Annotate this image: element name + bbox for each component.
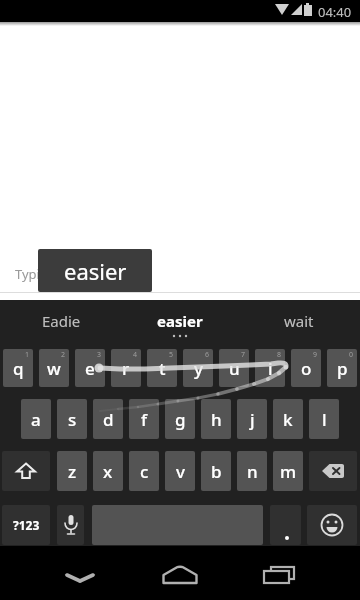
staticText: v <box>176 460 185 483</box>
button[interactable] <box>56 563 104 593</box>
staticText: wait <box>284 311 314 331</box>
button[interactable]: z <box>57 451 87 491</box>
staticText: i <box>268 357 273 380</box>
staticText: d <box>103 408 114 431</box>
staticText: 9 <box>313 350 318 360</box>
staticText: Typing... <box>15 265 67 283</box>
button[interactable]: j <box>237 399 267 439</box>
button[interactable]: m <box>273 451 303 491</box>
button[interactable] <box>255 559 303 591</box>
staticText: p <box>337 357 348 380</box>
button[interactable] <box>309 451 357 491</box>
button[interactable]: o <box>291 349 321 387</box>
button[interactable]: k <box>273 399 303 439</box>
staticText: w <box>47 357 61 380</box>
button[interactable] <box>156 559 204 591</box>
staticText: 1 <box>25 350 30 360</box>
staticText: n <box>247 460 258 483</box>
staticText: 3 <box>97 350 102 360</box>
staticText: s <box>68 408 77 431</box>
staticText: u <box>229 357 240 380</box>
staticText: k <box>283 408 293 431</box>
button[interactable]: f <box>129 399 159 439</box>
staticText: 4 <box>133 350 138 360</box>
staticText: 04:40 <box>318 3 352 21</box>
staticText: 2 <box>61 350 66 360</box>
staticText: easier <box>64 256 127 286</box>
button[interactable] <box>307 505 357 545</box>
button[interactable]: b <box>201 451 231 491</box>
button[interactable] <box>270 505 301 545</box>
button[interactable]: v <box>165 451 195 491</box>
staticText: f <box>141 408 148 431</box>
button[interactable]: c <box>129 451 159 491</box>
staticText: 5 <box>169 350 174 360</box>
button[interactable]: q <box>3 349 33 387</box>
button[interactable]: l <box>309 399 339 439</box>
button[interactable]: t <box>147 349 177 387</box>
staticText: m <box>280 460 297 483</box>
staticText: easier <box>157 311 203 331</box>
staticText: 8 <box>277 350 282 360</box>
staticText: x <box>103 460 113 483</box>
button[interactable]: x <box>93 451 123 491</box>
button[interactable]: i <box>255 349 285 387</box>
staticText: r <box>122 357 130 380</box>
staticText: c <box>140 460 149 483</box>
button[interactable]: u <box>219 349 249 387</box>
staticText: o <box>301 357 312 380</box>
staticText: Eadie <box>42 311 81 331</box>
staticText: q <box>13 357 24 380</box>
button[interactable]: r <box>111 349 141 387</box>
button[interactable]: g <box>165 399 195 439</box>
staticText: 0 <box>349 350 354 360</box>
button[interactable]: ?123 <box>2 505 50 545</box>
button[interactable]: d <box>93 399 123 439</box>
staticText: b <box>211 460 222 483</box>
staticText: e <box>85 357 95 380</box>
button[interactable]: wait <box>259 310 339 332</box>
button[interactable] <box>2 451 50 491</box>
staticText: z <box>68 460 77 483</box>
button[interactable]: Eadie <box>21 310 101 332</box>
button[interactable]: w <box>39 349 69 387</box>
staticText: a <box>31 408 41 431</box>
button[interactable]: e <box>75 349 105 387</box>
button[interactable]: s <box>57 399 87 439</box>
button[interactable]: easier <box>140 310 220 332</box>
staticText: g <box>175 408 186 431</box>
staticText: ?123 <box>13 517 40 533</box>
staticText: t <box>159 357 166 380</box>
staticText: l <box>322 408 327 431</box>
staticText: 7 <box>241 350 246 360</box>
staticText: j <box>250 408 255 431</box>
button[interactable]: p <box>327 349 357 387</box>
button[interactable]: n <box>237 451 267 491</box>
staticText: y <box>194 357 203 380</box>
button[interactable] <box>57 505 84 545</box>
button[interactable]: y <box>183 349 213 387</box>
staticText: 6 <box>205 350 210 360</box>
button[interactable]: h <box>201 399 231 439</box>
button[interactable]: a <box>21 399 51 439</box>
staticText: h <box>211 408 222 431</box>
